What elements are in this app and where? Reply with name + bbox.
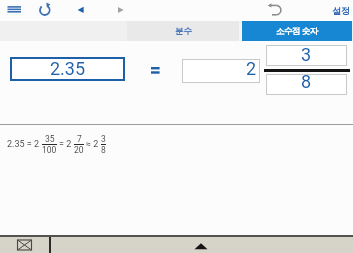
staticText: 3 [301, 44, 312, 65]
staticText: 2.35 = 2 [7, 139, 40, 150]
staticText: 35 [45, 134, 55, 144]
staticText: 소수점 숫자 [276, 25, 318, 37]
button[interactable]: 2 [182, 59, 260, 83]
button[interactable] [50, 237, 353, 253]
staticText: 7 [77, 134, 82, 144]
staticText: 3 [101, 134, 106, 144]
staticText: 8 [301, 71, 312, 92]
staticText: 20 [74, 145, 84, 155]
button[interactable] [37, 2, 53, 18]
staticText: ≈ 2 [86, 139, 99, 150]
staticText: 설정 [332, 5, 350, 16]
staticText: 2 [246, 58, 257, 79]
staticText: 8 [101, 145, 106, 155]
button[interactable]: 3 [266, 45, 347, 66]
staticText: = 2 [59, 139, 72, 150]
button[interactable]: 2.35 [10, 57, 125, 81]
staticText: 100 [42, 145, 57, 155]
button[interactable] [265, 3, 284, 18]
button[interactable] [74, 3, 87, 16]
staticText: 2.35 [50, 58, 86, 79]
button[interactable] [5, 3, 24, 16]
button[interactable]: 8 [266, 74, 347, 95]
button[interactable] [6, 237, 48, 253]
staticText: 분수 [175, 26, 192, 37]
button[interactable]: 분수 [127, 21, 239, 41]
button[interactable]: 소수점 숫자 [242, 21, 352, 41]
button[interactable]: 설정 [329, 2, 353, 18]
button[interactable] [114, 3, 127, 16]
